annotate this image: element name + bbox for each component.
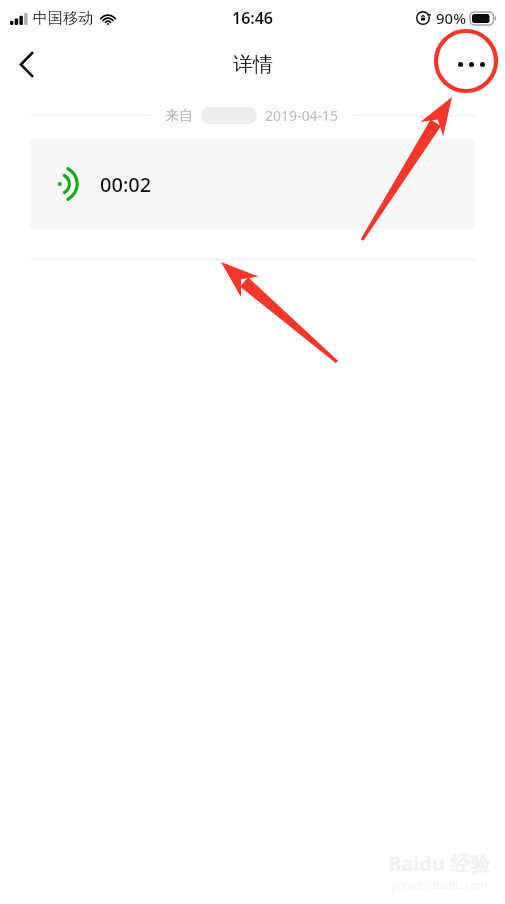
staticText: Baidu 经验 xyxy=(388,850,491,877)
staticText: 16:46 xyxy=(232,7,274,29)
staticText: 中国移动 xyxy=(33,9,93,28)
button[interactable]: Back xyxy=(0,38,52,90)
staticText: 2019-04-15 xyxy=(265,106,339,125)
staticText: 90% xyxy=(436,8,466,28)
button[interactable]: More options xyxy=(449,42,493,86)
staticText: jingyan.baidu.com xyxy=(392,877,488,892)
staticText: 详情 xyxy=(233,52,273,77)
button[interactable]: 00:02 xyxy=(30,139,475,229)
staticText: 来自 xyxy=(165,107,193,125)
staticText: 00:02 xyxy=(100,171,152,198)
